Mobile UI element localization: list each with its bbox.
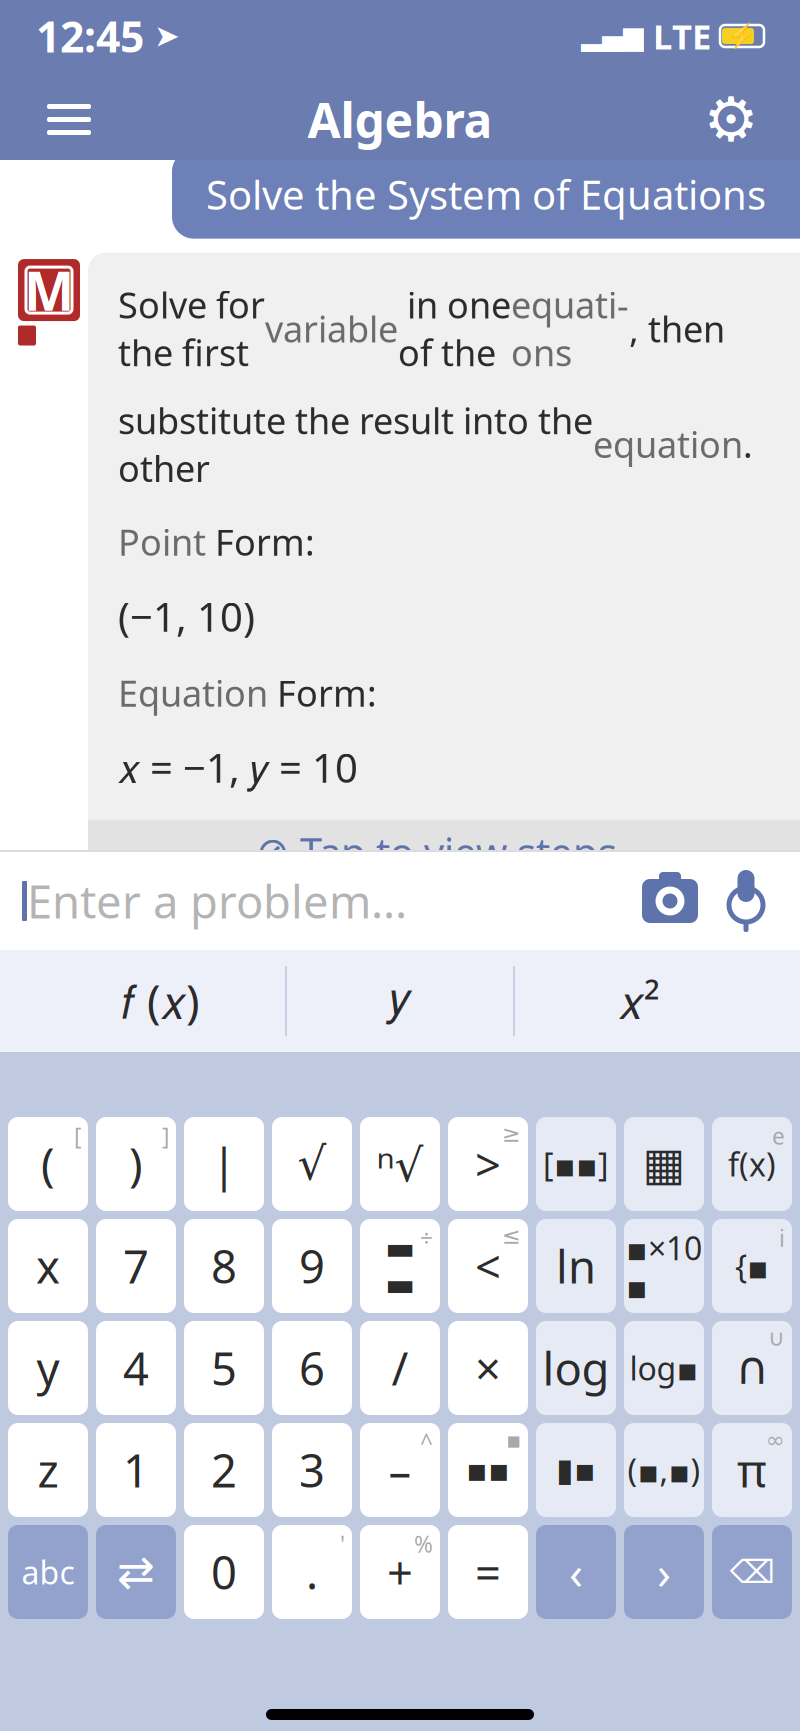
button[interactable]: z (8, 1423, 88, 1517)
button[interactable]: > (448, 1117, 528, 1211)
staticText: ⊘ (256, 829, 290, 874)
staticText: Algebra (307, 88, 492, 151)
button[interactable]: Menu (26, 84, 112, 154)
button[interactable]: ⇄ (96, 1525, 176, 1619)
button[interactable]: + (360, 1525, 440, 1619)
staticText: Tap to show graph... (148, 974, 370, 1080)
staticText: ∪ (768, 1325, 785, 1351)
button[interactable]: 1 (96, 1423, 176, 1517)
staticText: / (391, 1338, 408, 1398)
button[interactable]: √ (272, 1117, 352, 1211)
staticText: . (306, 1542, 318, 1602)
button[interactable]: ▪▪ (448, 1423, 528, 1517)
staticText: equation (593, 420, 743, 468)
staticText: ≤ (502, 1223, 521, 1249)
staticText: ∞ (766, 1427, 785, 1453)
staticText: ▂▄▆ (581, 21, 644, 51)
button[interactable]: x (8, 1219, 88, 1313)
staticText: 𝑓 (𝑥) (121, 971, 200, 1031)
staticText: z (37, 1440, 58, 1500)
button[interactable]: [▪▪] (536, 1117, 616, 1211)
button[interactable]: abc (8, 1525, 88, 1619)
staticText: Equation (118, 669, 268, 717)
button[interactable]: ‹ (536, 1525, 616, 1619)
button[interactable]: y (8, 1321, 88, 1415)
staticText: . (743, 420, 753, 468)
button[interactable]: ) (96, 1117, 176, 1211)
staticText: f(x) (728, 1143, 776, 1185)
staticText: 9 (299, 1236, 325, 1296)
staticText: Form: (268, 669, 377, 717)
staticText: ▪▪ (466, 1452, 510, 1488)
staticText: variable (265, 305, 398, 352)
staticText: in one of the (398, 281, 511, 376)
button[interactable]: 6 (272, 1321, 352, 1415)
button[interactable]: 7 (96, 1219, 176, 1313)
button[interactable]: ⁿ√ (360, 1117, 440, 1211)
staticText: Enter a problem... (27, 871, 407, 931)
button[interactable]: ∩ (712, 1321, 792, 1415)
staticText: 8 (211, 1236, 237, 1296)
button[interactable]: ▮▪ (536, 1423, 616, 1517)
button[interactable]: | (184, 1117, 264, 1211)
staticText: ▪×10▪ (626, 1227, 702, 1305)
button[interactable]: ⌫ (712, 1525, 792, 1619)
button[interactable]: 0 (184, 1525, 264, 1619)
button[interactable]: 3 (272, 1423, 352, 1517)
staticText: Tap to view steps... (300, 825, 650, 878)
button[interactable]: f(x) (712, 1117, 792, 1211)
staticText: ( (41, 1134, 55, 1194)
staticText: ^ (420, 1427, 433, 1457)
button[interactable]: log (536, 1321, 616, 1415)
button[interactable]: log▪ (624, 1321, 704, 1415)
button[interactable]: ▬ ▬ (360, 1219, 440, 1313)
staticText: | (211, 1134, 236, 1194)
staticText: + (387, 1542, 413, 1602)
button[interactable]: 9 (272, 1219, 352, 1313)
staticText: ▦ (642, 1138, 685, 1190)
staticText: ⁿ√ (376, 1134, 423, 1194)
staticText: ⇄ (117, 1546, 155, 1598)
button[interactable]: 8 (184, 1219, 264, 1313)
button[interactable]: . (272, 1525, 352, 1619)
button[interactable]: › (624, 1525, 704, 1619)
button[interactable]: ln (536, 1219, 616, 1313)
button[interactable]: {▪ (712, 1219, 792, 1313)
button[interactable]: 2 (184, 1423, 264, 1517)
button[interactable]: – (360, 1423, 440, 1517)
staticText: {▪ (735, 1245, 769, 1287)
staticText: Solve the System of Equations (206, 168, 766, 221)
button[interactable]: + (88, 996, 388, 1058)
staticText: ' (340, 1529, 345, 1559)
button[interactable]: = (448, 1525, 528, 1619)
staticText: 2 (211, 1440, 237, 1500)
staticText: 0 (211, 1542, 237, 1602)
staticText: i (779, 1223, 785, 1253)
button[interactable]: × (448, 1321, 528, 1415)
staticText: › (657, 1542, 671, 1602)
button[interactable]: Voice input (710, 866, 782, 936)
staticText: equations (511, 281, 629, 376)
button[interactable]: Settings (688, 84, 774, 154)
button[interactable]: ⊘ (88, 820, 800, 884)
button[interactable]: 𝑦 (287, 966, 513, 1036)
button[interactable]: Camera (630, 866, 710, 936)
button[interactable]: ▦ (624, 1117, 704, 1211)
staticText: [▪▪] (543, 1143, 609, 1185)
button[interactable]: ▪×10▪ (624, 1219, 704, 1313)
button[interactable]: / (360, 1321, 440, 1415)
button[interactable]: 𝑓 (𝑥) (36, 966, 285, 1036)
button[interactable]: < (448, 1219, 528, 1313)
staticText: √ (297, 1138, 326, 1190)
button[interactable]: 𝑥² (515, 966, 764, 1036)
button[interactable]: ( (8, 1117, 88, 1211)
button[interactable]: 5 (184, 1321, 264, 1415)
staticText: log (542, 1338, 609, 1398)
staticText: – (388, 1440, 411, 1500)
staticText: ÷ (420, 1223, 433, 1253)
staticText: −2𝑦 = −𝑥 − 21 (510, 61, 766, 118)
staticText: ⚙ (703, 85, 758, 154)
button[interactable]: (▪,▪) (624, 1423, 704, 1517)
button[interactable]: 4 (96, 1321, 176, 1415)
button[interactable]: π (712, 1423, 792, 1517)
